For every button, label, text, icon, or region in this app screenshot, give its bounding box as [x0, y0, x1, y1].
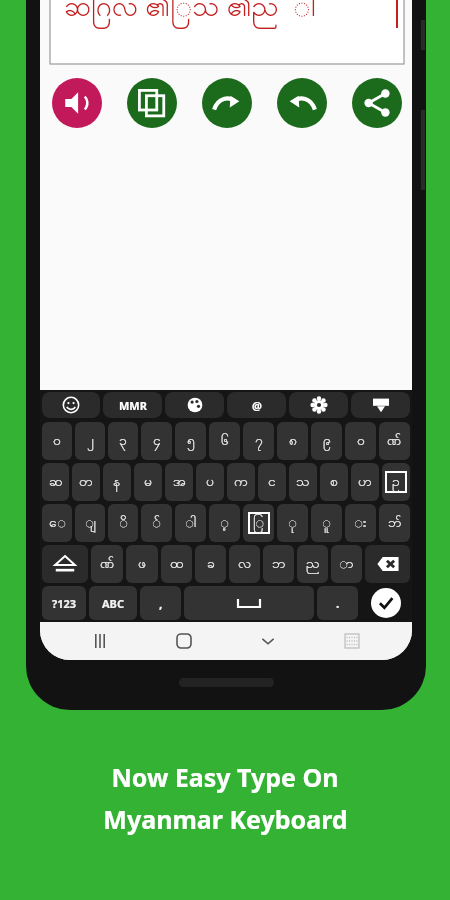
button[interactable]: ၆	[209, 422, 240, 460]
button[interactable]: Redo	[202, 78, 252, 128]
button[interactable]: Shift	[42, 545, 88, 583]
staticText: ၀	[53, 431, 61, 452]
staticText: ၉	[323, 431, 331, 452]
button[interactable]: ြ	[243, 504, 274, 542]
button[interactable]: Speak	[52, 78, 102, 128]
button[interactable]: ?123	[42, 586, 86, 620]
staticText: Myanmar Keyboard	[103, 802, 348, 836]
button[interactable]: ူ	[311, 504, 342, 542]
button[interactable]: င	[258, 463, 286, 501]
staticText: ူ	[322, 513, 331, 534]
staticText: သ	[296, 472, 310, 493]
button[interactable]: @	[227, 392, 286, 418]
button[interactable]: ဥ	[382, 463, 410, 501]
staticText: န	[113, 472, 121, 493]
button[interactable]: ဆ	[42, 463, 69, 501]
button[interactable]: ာ	[331, 545, 362, 583]
button[interactable]: Keyboard switcher	[310, 622, 394, 660]
staticText: က	[234, 472, 248, 493]
staticText: စ	[330, 472, 338, 493]
staticText: ၆	[221, 431, 229, 452]
button[interactable]: ABC	[89, 586, 137, 620]
staticText: ၇	[255, 431, 263, 452]
staticText: .	[336, 595, 340, 611]
button[interactable]: ၇	[243, 422, 274, 460]
button[interactable]: က	[227, 463, 255, 501]
button[interactable]: ၅	[175, 422, 206, 460]
button[interactable]: ဖ	[126, 545, 158, 583]
button[interactable]: ဏ်	[91, 545, 123, 583]
button[interactable]: Copy	[127, 78, 177, 128]
button[interactable]: Theme	[165, 392, 224, 418]
staticText: ဖ	[138, 554, 146, 575]
button[interactable]: Undo	[277, 78, 327, 128]
button[interactable]: ၃	[108, 422, 138, 460]
button[interactable]: ဘ	[263, 545, 294, 583]
staticText: ဘ်	[388, 513, 402, 534]
button[interactable]: Recents	[58, 622, 142, 660]
button[interactable]: ါ	[175, 504, 206, 542]
button[interactable]: ု	[277, 504, 308, 542]
staticText: ၄	[153, 431, 161, 452]
button[interactable]: ၂	[75, 422, 105, 460]
button[interactable]: MMR	[103, 392, 162, 418]
staticText: င	[268, 472, 276, 493]
staticText: တ	[79, 472, 93, 493]
button[interactable]: Back	[226, 622, 310, 660]
button[interactable]: ထ	[161, 545, 192, 583]
button[interactable]: Share	[352, 78, 402, 128]
button[interactable]: Settings	[289, 392, 348, 418]
button[interactable]: Enter	[361, 586, 410, 620]
staticText: ပ	[206, 472, 214, 493]
button[interactable]: ်	[141, 504, 172, 542]
button[interactable]: ိ	[108, 504, 138, 542]
button[interactable]: ျ	[75, 504, 105, 542]
button[interactable]: မ	[134, 463, 162, 501]
staticText: ြ	[253, 513, 265, 533]
staticText: း	[354, 513, 367, 534]
staticText: ိ	[119, 513, 128, 534]
button[interactable]: ့	[209, 504, 240, 542]
button[interactable]: ပ	[196, 463, 224, 501]
button[interactable]: ၄	[141, 422, 172, 460]
staticText: ဥ	[392, 472, 400, 492]
button[interactable]: ၈	[277, 422, 308, 460]
button[interactable]: း	[345, 504, 376, 542]
staticText: ဘ	[272, 554, 286, 575]
button[interactable]: Backspace	[365, 545, 410, 583]
staticText: ဏ်	[100, 554, 115, 575]
button[interactable]: Emoji	[42, 392, 100, 418]
staticText: ာ	[339, 554, 354, 575]
button[interactable]: Home	[142, 622, 226, 660]
button[interactable]: ခ	[195, 545, 226, 583]
button[interactable]: Hide keyboard	[351, 392, 410, 418]
button[interactable]: Space	[184, 586, 314, 620]
button[interactable]: စ	[320, 463, 348, 501]
staticText: ဟ	[358, 472, 372, 493]
staticText: မ	[144, 472, 152, 493]
button[interactable]: ည	[297, 545, 328, 583]
staticText: ေ	[49, 513, 66, 534]
staticText: ်	[152, 513, 161, 534]
staticText: ခ	[207, 554, 215, 575]
button[interactable]: တ	[72, 463, 100, 501]
button[interactable]: ဟ	[351, 463, 379, 501]
button[interactable]: ေ	[42, 504, 72, 542]
button[interactable]: ၉	[311, 422, 342, 460]
button[interactable]: န	[103, 463, 131, 501]
button[interactable]: ၀	[345, 422, 376, 460]
staticText: အ	[173, 472, 186, 493]
button[interactable]: အ	[165, 463, 193, 501]
button[interactable]: သ	[289, 463, 317, 501]
button[interactable]: ဘ်	[379, 504, 410, 542]
staticText: Now Easy Type On	[111, 760, 339, 794]
button[interactable]: .	[317, 586, 358, 620]
button[interactable]: ၀	[42, 422, 72, 460]
staticText: ု	[288, 513, 297, 534]
staticText: လ	[238, 554, 252, 575]
button[interactable]: လ	[229, 545, 260, 583]
button[interactable]: ဏ်	[379, 422, 410, 460]
staticText: ည	[306, 554, 320, 575]
staticText: ?123	[52, 596, 77, 611]
button[interactable]: ,	[140, 586, 181, 620]
